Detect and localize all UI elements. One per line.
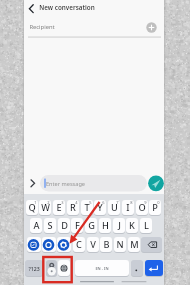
button[interactable]: I [122, 200, 134, 215]
button[interactable]: C [73, 237, 85, 252]
staticText: P [152, 201, 158, 214]
staticText: G [88, 219, 95, 232]
button[interactable] [145, 260, 163, 276]
staticText: V [90, 238, 96, 251]
button[interactable]: O [136, 200, 148, 215]
button[interactable]: F [71, 218, 83, 233]
button[interactable]: ?123 [25, 260, 43, 276]
button[interactable] [46, 260, 57, 276]
button[interactable] [42, 237, 56, 252]
staticText: 9 [144, 200, 147, 205]
button[interactable]: W [39, 200, 51, 215]
staticText: R [70, 201, 76, 214]
staticText: 1 [34, 200, 37, 205]
staticText: EN - IN [95, 266, 109, 271]
staticText: 4 [75, 200, 78, 205]
button[interactable] [131, 260, 143, 276]
button[interactable]: A [30, 218, 42, 233]
button[interactable] [28, 177, 37, 189]
staticText: H [102, 219, 109, 232]
button[interactable] [145, 21, 158, 34]
button[interactable]: L [140, 218, 152, 233]
button[interactable] [27, 19, 141, 37]
staticText: 8 [130, 200, 133, 205]
button[interactable] [57, 237, 71, 252]
staticText: ?123 [28, 265, 40, 272]
staticText: 7 [116, 200, 119, 205]
button[interactable] [141, 237, 162, 252]
button[interactable] [26, 2, 36, 15]
button[interactable]: T [81, 200, 93, 215]
staticText: L [144, 219, 149, 232]
staticText: S [47, 219, 53, 232]
staticText: C [76, 238, 82, 251]
button[interactable]: K [126, 218, 138, 233]
button[interactable]: M [128, 237, 140, 252]
staticText: I [126, 201, 130, 214]
button[interactable]: J [113, 218, 125, 233]
button[interactable]: R [67, 200, 79, 215]
staticText: J [118, 219, 121, 232]
button[interactable]: Q [26, 200, 38, 215]
button[interactable]: U [108, 200, 120, 215]
button[interactable]: V [87, 237, 99, 252]
staticText: F [75, 219, 80, 232]
staticText: Enter message [46, 180, 85, 188]
staticText: 2 [47, 200, 50, 205]
staticText: New conversation [39, 3, 95, 12]
button[interactable] [27, 237, 41, 252]
button[interactable]: EN - IN [75, 260, 129, 276]
staticText: Y [97, 201, 103, 214]
staticText: 0 [157, 200, 160, 205]
staticText: Recipient [29, 23, 55, 31]
button[interactable]: P [149, 200, 161, 215]
staticText: W [41, 201, 50, 214]
button[interactable]: B [100, 237, 112, 252]
button[interactable]: G [85, 218, 97, 233]
staticText: T [84, 201, 90, 214]
staticText: N [116, 238, 124, 251]
staticText: D [61, 219, 68, 232]
staticText: E [56, 201, 62, 214]
staticText: K [129, 219, 135, 232]
button[interactable]: E [53, 200, 65, 215]
button[interactable]: S [44, 218, 56, 233]
staticText: 3 [61, 200, 64, 205]
staticText: U [111, 201, 118, 214]
button[interactable]: New conversation [39, 3, 95, 12]
button[interactable]: N [114, 237, 126, 252]
staticText: M [130, 238, 139, 251]
staticText: O [138, 201, 146, 214]
staticText: Q [28, 201, 36, 214]
button[interactable]: H [99, 218, 111, 233]
button[interactable] [58, 260, 70, 276]
staticText: B [103, 238, 110, 251]
staticText: 6 [102, 200, 105, 205]
staticText: 5 [89, 200, 92, 205]
staticText: A [33, 219, 40, 232]
button[interactable]: D [58, 218, 70, 233]
button[interactable]: Y [94, 200, 106, 215]
button[interactable] [148, 175, 164, 191]
button[interactable] [40, 174, 147, 192]
